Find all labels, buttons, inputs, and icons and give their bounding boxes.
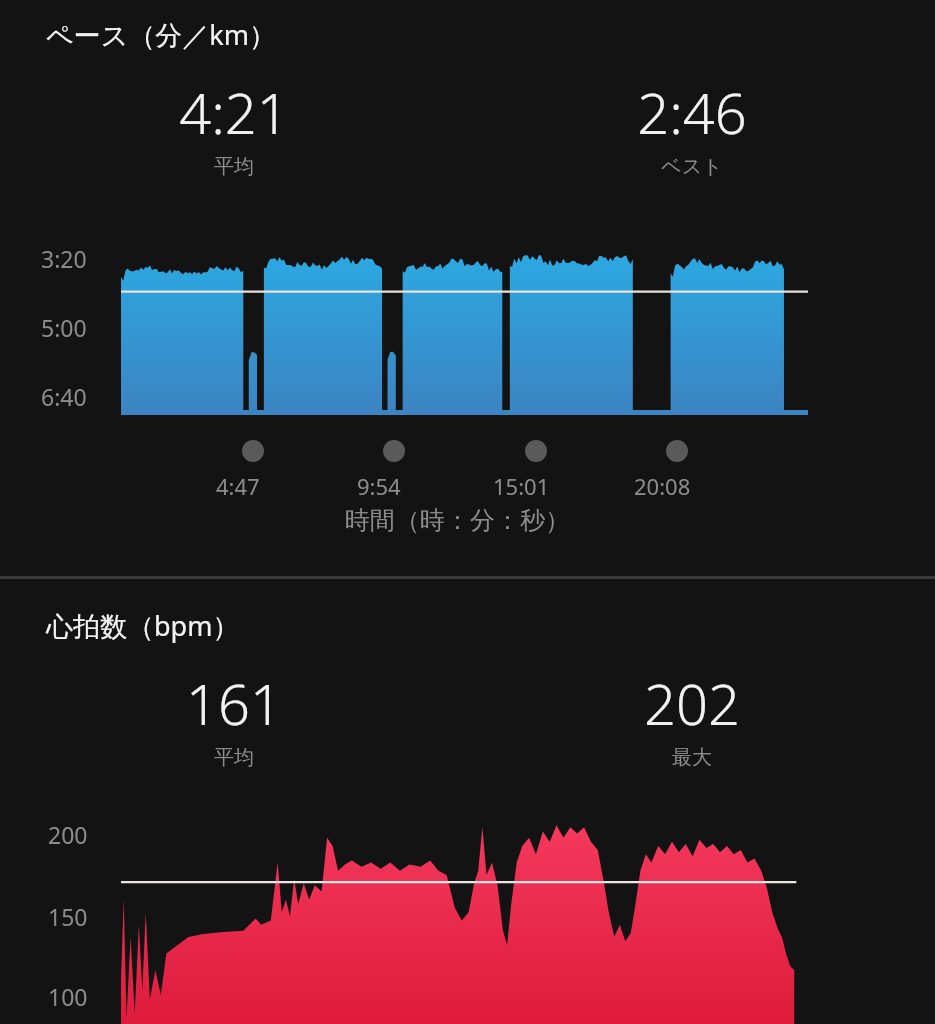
staticText: 3:20 [41,243,87,274]
button[interactable]: Pace graph [121,240,808,415]
staticText: 200 [48,819,88,850]
staticText: 161 [186,665,282,741]
button[interactable]: Heart rate graph [121,817,808,1024]
staticText: 5:00 [41,312,87,343]
staticText: 20:08 [634,471,691,501]
staticText: ベスト [661,154,723,179]
staticText: 心拍数（bpm） [46,607,240,644]
button[interactable]: 161 [0,665,468,770]
staticText: 150 [48,901,88,932]
staticText: 時間（時：分：秒） [0,505,925,536]
staticText: 平均 [214,745,254,770]
button[interactable]: 202 [458,665,926,770]
staticText: 4:47 [216,471,260,501]
staticText: 202 [644,665,740,741]
staticText: 15:01 [493,471,550,501]
staticText: 最大 [672,745,712,770]
staticText: 平均 [214,154,254,179]
staticText: ペース（分／km） [46,16,276,53]
staticText: 9:54 [357,471,401,501]
button[interactable]: 4:21 [0,74,468,179]
staticText: 2:46 [637,74,747,150]
staticText: 4:21 [179,74,289,150]
button[interactable]: 2:46 [458,74,926,179]
staticText: 100 [48,981,88,1012]
staticText: 6:40 [41,381,87,412]
